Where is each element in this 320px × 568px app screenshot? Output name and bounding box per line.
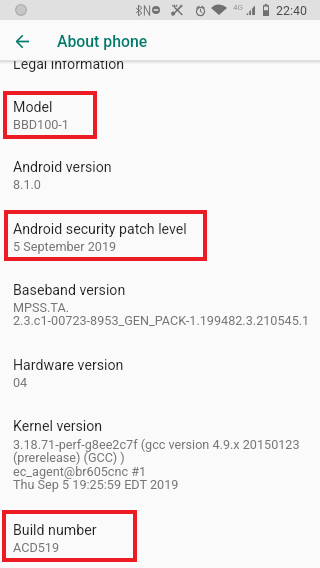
staticText: Model (13, 99, 53, 116)
staticText: Legal information (13, 61, 125, 73)
button[interactable]: Kernel version (0, 409, 320, 512)
staticText: 4G (233, 3, 243, 12)
staticText: Android security patch level (13, 221, 187, 238)
staticText: (prerelease) (GCC) ) (13, 450, 125, 465)
button[interactable]: Build number (0, 512, 320, 568)
staticText: 5 September 2019 (13, 239, 117, 254)
staticText: MPSS.TA. (13, 300, 69, 315)
staticText: Android version (13, 159, 112, 176)
button[interactable]: Android version (0, 151, 320, 212)
staticText: Build number (13, 522, 97, 539)
staticText: Hardware version (13, 357, 124, 374)
staticText: About phone (57, 32, 148, 51)
staticText: Kernel version (13, 418, 103, 435)
button[interactable]: Legal information (0, 61, 320, 90)
button[interactable]: Hardware version (0, 348, 320, 409)
staticText: Baseband version (13, 282, 126, 299)
staticText: ACD519 (13, 540, 60, 555)
button[interactable]: Model (0, 90, 320, 151)
staticText: 2.3.c1-00723-8953_GEN_PACK-1.199482.3.21… (13, 313, 310, 328)
staticText: BBD100-1 (13, 117, 69, 132)
button[interactable]: Navigate up (2, 21, 42, 61)
staticText: ec_agent@br605cnc #1 (13, 464, 147, 479)
staticText: 22:40 (276, 3, 307, 18)
staticText: 8.1.0 (13, 177, 41, 192)
staticText: 04 (13, 375, 28, 390)
button[interactable]: Baseband version (0, 273, 320, 348)
staticText: 3.18.71-perf-g8ee2c7f (gcc version 4.9.x… (13, 437, 300, 452)
button[interactable]: Android security patch level (0, 212, 320, 273)
staticText: Thu Sep 5 19:25:59 EDT 2019 (13, 477, 179, 492)
